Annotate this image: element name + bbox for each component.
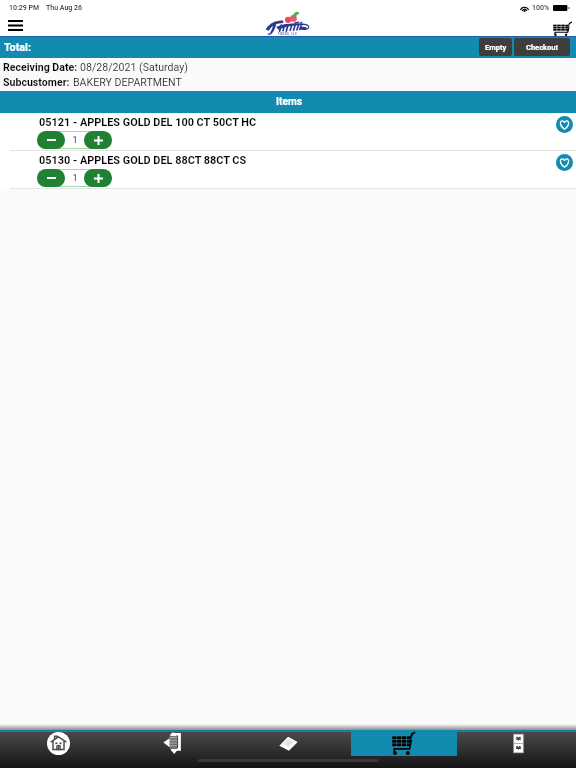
button[interactable]: Increase quantity — [84, 131, 112, 149]
button[interactable]: Orders — [116, 732, 231, 768]
staticText: Subcustomer: — [3, 76, 73, 88]
button[interactable]: Shopping cart — [551, 18, 573, 40]
staticText: 05121 - APPLES GOLD DEL 100 CT 50CT HC — [39, 116, 257, 129]
button[interactable]: 05121 - APPLES GOLD DEL 100 CT 50CT HC — [0, 113, 576, 151]
staticText: 05130 - APPLES GOLD DEL 88CT 88CT CS — [39, 154, 247, 167]
button[interactable]: Add to favorites — [556, 116, 573, 133]
staticText: 1 — [72, 135, 78, 146]
button[interactable]: Add to favorites — [556, 154, 573, 171]
staticText: Items — [276, 96, 302, 108]
button[interactable]: Catalog — [231, 732, 346, 768]
button[interactable]: Cart — [346, 732, 461, 768]
button[interactable]: 05130 - APPLES GOLD DEL 88CT 88CT CS — [0, 151, 576, 189]
button[interactable]: Home — [0, 732, 116, 768]
button[interactable]: Checkout — [514, 38, 570, 56]
staticText: 1 — [72, 173, 78, 184]
button[interactable]: Open navigation menu — [4, 14, 26, 36]
button[interactable]: Decrease quantity — [37, 131, 65, 149]
staticText: Empty — [485, 43, 507, 52]
button[interactable]: Empty — [479, 38, 512, 56]
staticText: Total: — [4, 41, 32, 54]
staticText: BAKERY DEPARTMENT — [73, 76, 182, 88]
staticText: 10:29 PM — [9, 4, 40, 12]
staticText: Checkout — [526, 43, 559, 52]
staticText: Receiving Date: — [3, 61, 80, 73]
staticText: 08/28/2021 (Saturday) — [80, 61, 188, 73]
button[interactable]: Decrease quantity — [37, 169, 65, 187]
button[interactable]: Inventory — [461, 732, 576, 768]
staticText: FOODS, LLC — [278, 32, 298, 36]
button[interactable]: Increase quantity — [84, 169, 112, 187]
staticText: Thu Aug 26 — [46, 4, 82, 12]
staticText: 100% — [532, 4, 550, 12]
